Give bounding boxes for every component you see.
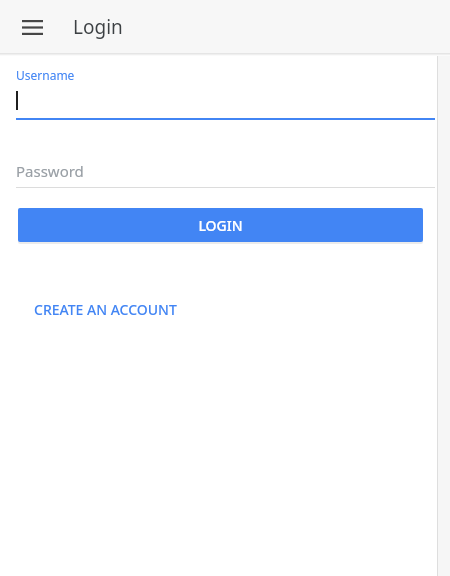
button[interactable]: LOGIN: [18, 208, 423, 242]
staticText: Username: [16, 67, 75, 83]
button[interactable]: CREATE AN ACCOUNT: [18, 293, 193, 326]
button[interactable]: [16, 91, 435, 113]
staticText: Password: [16, 161, 84, 181]
staticText: LOGIN: [198, 216, 243, 235]
button[interactable]: Open navigation menu: [13, 11, 51, 43]
staticText: CREATE AN ACCOUNT: [34, 300, 177, 319]
button[interactable]: Password: [16, 161, 435, 188]
staticText: Login: [73, 14, 123, 40]
